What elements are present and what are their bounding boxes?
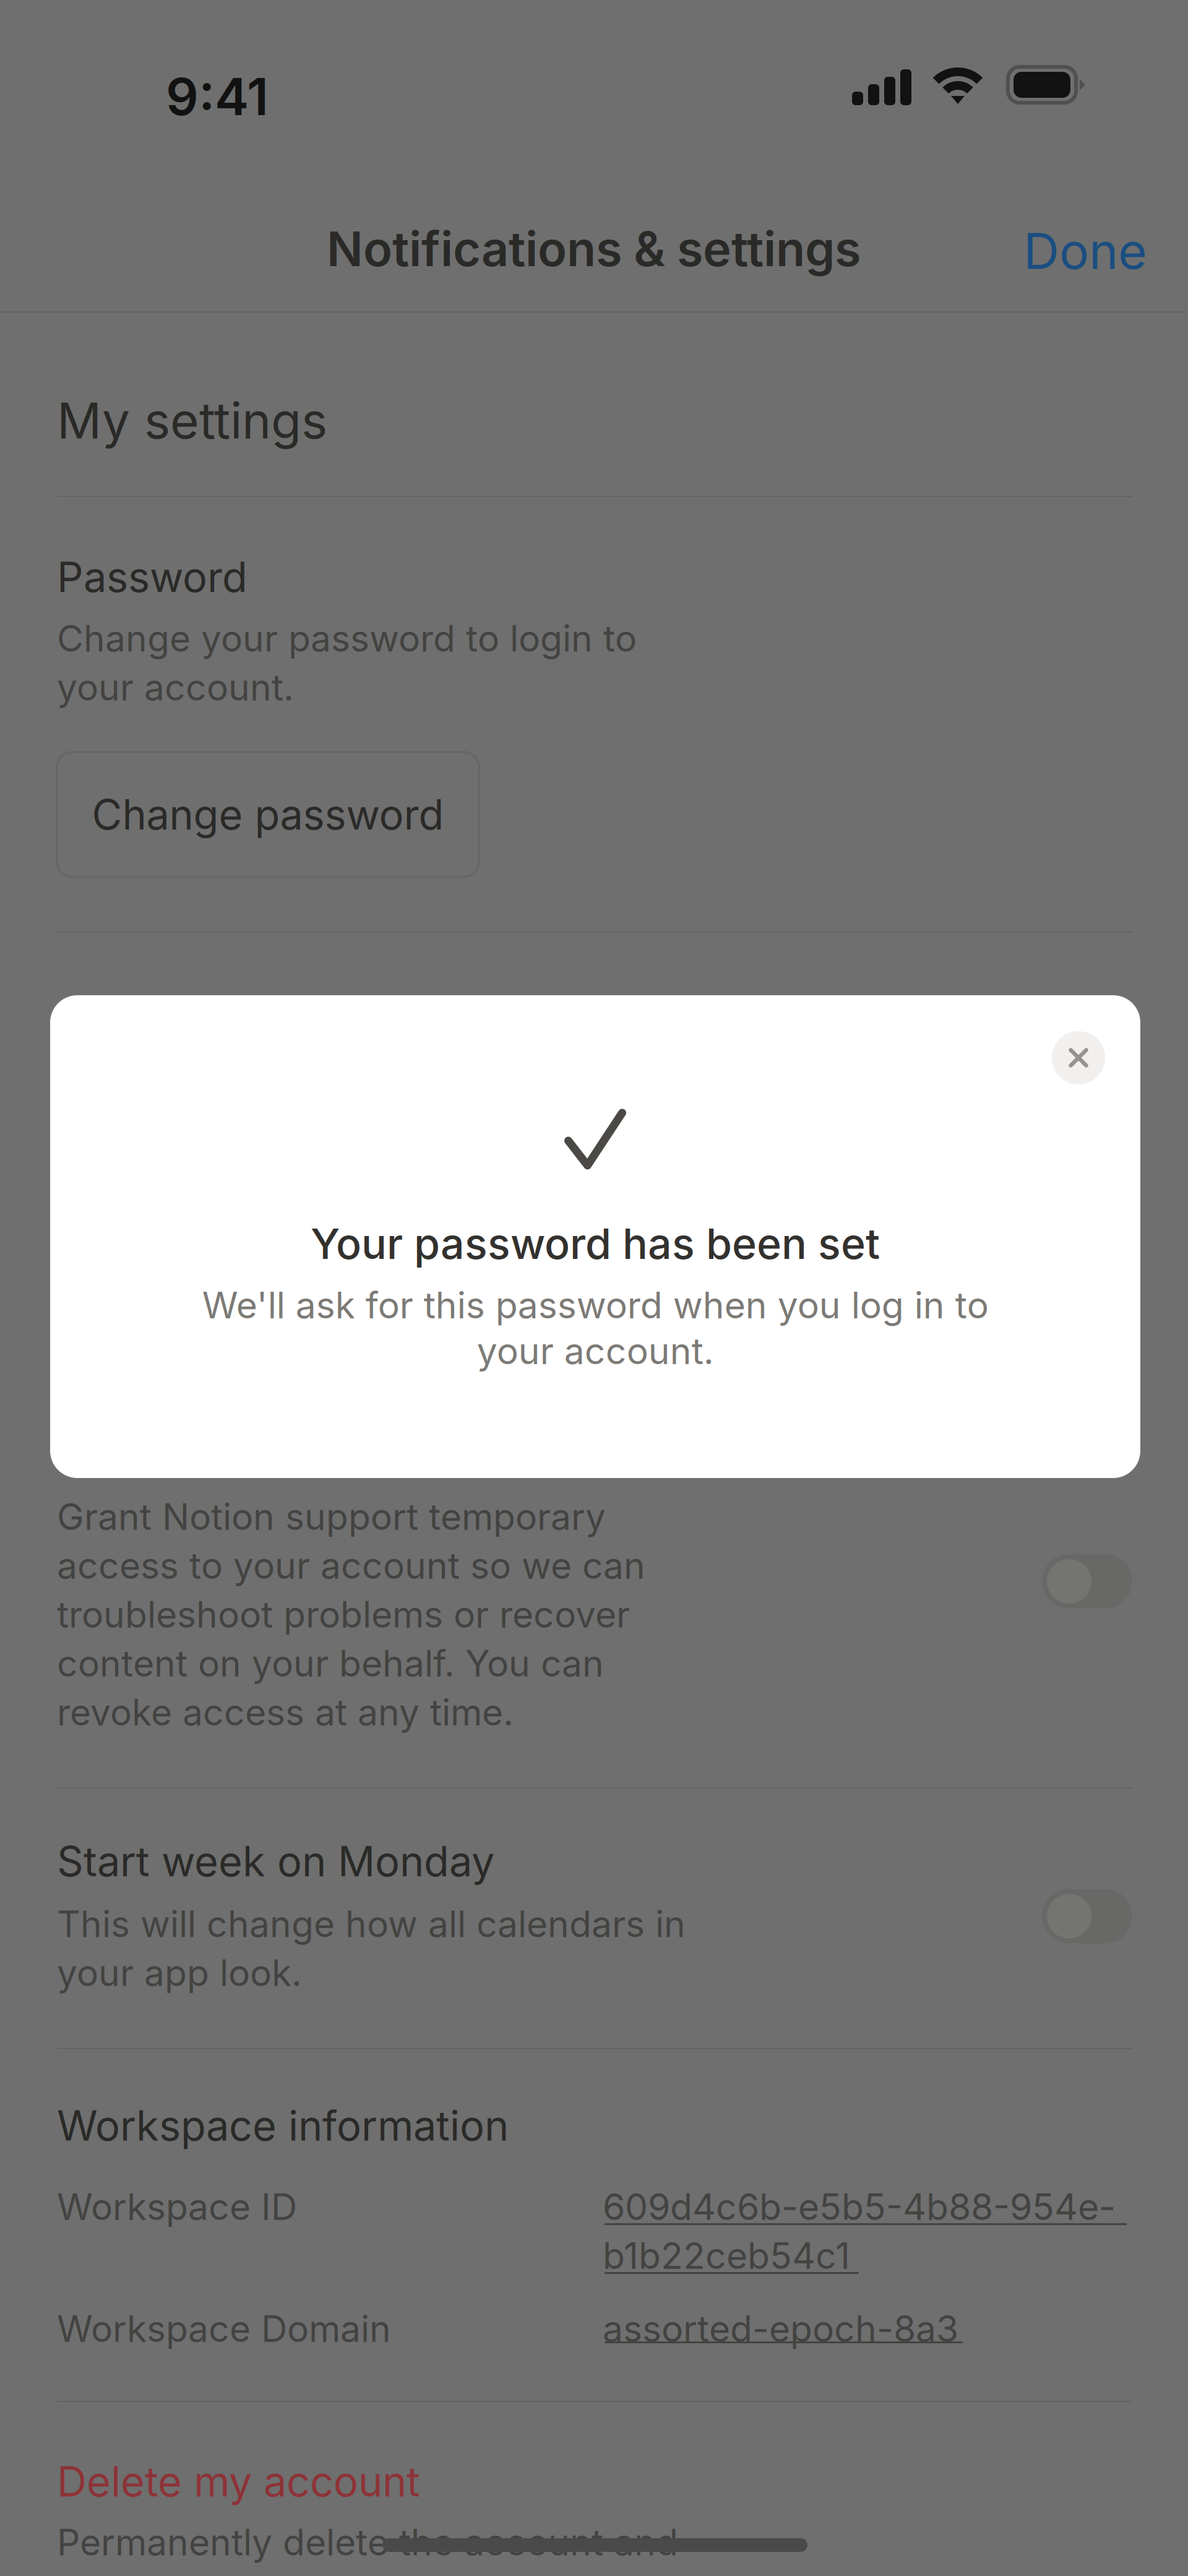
staticText: Workspace information xyxy=(57,2101,509,2151)
staticText: Workspace Domain xyxy=(57,2307,391,2351)
staticText: Change your password to login to your ac… xyxy=(57,616,637,709)
staticText: My settings xyxy=(57,391,327,450)
staticText: 9:41 xyxy=(166,66,269,128)
staticText: Notifications & settings xyxy=(327,220,861,278)
staticText: Start week on Monday xyxy=(57,1836,494,1886)
staticText: We'll ask for this password when you log… xyxy=(202,1283,988,1373)
staticText: Delete my account xyxy=(57,2457,420,2506)
button[interactable]: Toggle xyxy=(1042,1554,1132,1609)
staticText: Password xyxy=(57,552,247,602)
button[interactable]: Close xyxy=(1052,1031,1105,1084)
button[interactable]: Toggle xyxy=(1042,1889,1132,1943)
staticText: Grant Notion support temporary access to… xyxy=(57,1495,645,1734)
staticText: Permanently delete the account and xyxy=(57,2520,678,2564)
staticText: This will change how all calendars in yo… xyxy=(57,1902,686,1995)
staticText: Your password has been set xyxy=(311,1218,880,1269)
staticText: 609d4c6b-e5b5-4b88-954e- b1b22ceb54c1 xyxy=(603,2185,1116,2278)
staticText: Done xyxy=(1023,221,1147,281)
staticText: Change password xyxy=(92,790,444,840)
staticText: Workspace ID xyxy=(57,2185,297,2229)
button[interactable]: Done xyxy=(1023,221,1147,281)
staticText: assorted-epoch-8a3 xyxy=(603,2307,958,2351)
button[interactable]: Change password xyxy=(57,752,479,877)
staticText: Support access xyxy=(57,990,362,1040)
